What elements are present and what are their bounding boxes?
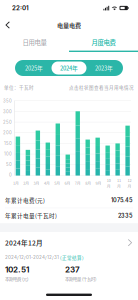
staticText: 1075.45 — [111, 197, 133, 204]
staticText: 2023年 — [95, 64, 113, 72]
staticText: 本期电费 (元) — [5, 275, 28, 282]
staticText: 300 — [3, 109, 12, 114]
staticText: 本期电量 (千瓦时) — [65, 275, 96, 282]
staticText: 150 — [4, 141, 12, 146]
staticText: 10月 — [107, 178, 111, 189]
staticText: 2月 — [23, 180, 29, 186]
staticText: 22:01 — [12, 4, 29, 12]
button[interactable]: Back — [2, 18, 14, 32]
staticText: 电量电费 — [57, 21, 81, 29]
staticText: 50 — [6, 162, 12, 167]
staticText: 6月 — [64, 180, 70, 186]
staticText: 年累计电费(元) — [5, 196, 45, 204]
button[interactable]: 2024年12月 — [0, 235, 138, 250]
staticText: 3月 — [34, 180, 40, 186]
staticText: 1月 — [13, 180, 19, 186]
button[interactable]: 日用电量 — [0, 34, 69, 52]
button[interactable]: 2023年 — [86, 61, 121, 74]
staticText: 2335 — [118, 212, 133, 219]
staticText: 年累计电量(千瓦时) — [5, 212, 57, 220]
staticText: 11月 — [117, 178, 121, 189]
staticText: 2025年 — [25, 64, 43, 72]
staticText: 100 — [4, 151, 12, 156]
staticText: (正常结算) — [59, 254, 84, 261]
staticText: 12月 — [127, 178, 131, 189]
staticText: 2024年12月 — [5, 238, 43, 247]
staticText: 7月 — [75, 180, 81, 186]
staticText: 单位：千瓦时 — [4, 84, 34, 91]
staticText: 2024年 — [60, 64, 78, 72]
staticText: 200 — [3, 130, 12, 135]
staticText: 237 — [65, 265, 80, 274]
button[interactable]: 2024年 — [51, 61, 86, 74]
staticText: 9月 — [95, 180, 101, 186]
button[interactable]: 月度电费 — [69, 34, 138, 52]
staticText: 4月 — [44, 180, 50, 186]
staticText: 350 — [3, 98, 12, 104]
staticText: 5月 — [54, 180, 60, 186]
staticText: 点击柱状图查看当月用电情况 — [69, 84, 134, 91]
staticText: 0 — [9, 172, 12, 178]
staticText: 2024/12/01-2024/12/31 — [5, 255, 59, 260]
staticText: 250 — [3, 120, 12, 125]
staticText: 日用电量 — [22, 38, 46, 47]
staticText: 月度电费 — [91, 38, 115, 47]
button[interactable]: 2025年 — [16, 61, 51, 74]
staticText: 102.51 — [5, 265, 29, 274]
staticText: 8月 — [85, 180, 91, 186]
